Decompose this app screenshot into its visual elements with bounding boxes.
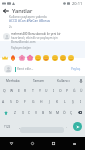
button[interactable]: Sparkles — [26, 54, 34, 62]
button[interactable]: Kullanıcı — [51, 76, 76, 85]
staticText: Kullanıcı — [57, 79, 70, 83]
button[interactable]: Home — [22, 137, 43, 150]
staticText: T — [32, 88, 34, 93]
button[interactable]: V — [33, 107, 40, 118]
button[interactable]: P — [64, 85, 71, 96]
staticText: hazırlandı, etkinlik ve paylaşım için — [11, 36, 58, 40]
button[interactable]: Q — [0, 85, 8, 96]
staticText: X — [22, 110, 24, 115]
staticText: B — [42, 110, 45, 115]
button[interactable]: L — [61, 96, 69, 107]
staticText: Paylaşımı beğen — [11, 46, 31, 50]
button[interactable]: T — [29, 85, 36, 96]
button[interactable]: Crown — [1, 54, 9, 62]
button[interactable]: J — [45, 96, 53, 107]
staticText: Ş — [72, 99, 74, 104]
button[interactable]: Paylaş — [69, 65, 83, 73]
button[interactable]: K — [53, 96, 61, 107]
staticText: O — [59, 88, 62, 93]
staticText: K — [56, 99, 59, 104]
button[interactable]: Blossom — [18, 54, 26, 62]
button[interactable]: A — [0, 96, 7, 107]
staticText: W — [10, 88, 14, 93]
staticText: F — [24, 99, 26, 104]
staticText: M — [56, 110, 60, 115]
staticText: Ö — [63, 110, 66, 115]
staticText: Yanıtlar — [12, 7, 33, 15]
button[interactable]: Wink — [67, 54, 75, 62]
staticText: Tamam — [33, 79, 45, 83]
staticText: , — [19, 124, 20, 129]
button[interactable]: Back — [0, 137, 22, 150]
button[interactable]: Back — [1, 6, 10, 15]
staticText: H — [40, 99, 43, 104]
button[interactable]: I — [77, 96, 85, 107]
button[interactable]: Grin — [51, 54, 59, 62]
button[interactable]: X — [19, 107, 26, 118]
button[interactable]: Comma — [15, 120, 23, 133]
button[interactable]: D — [14, 96, 21, 107]
button[interactable]: Ğ — [71, 85, 78, 96]
button[interactable]: S — [7, 96, 14, 107]
staticText: 20:11 — [72, 1, 83, 6]
button[interactable]: G — [29, 96, 37, 107]
button[interactable]: F — [21, 96, 29, 107]
button[interactable]: Tamam — [26, 76, 51, 85]
staticText: Ç — [70, 110, 73, 115]
button[interactable]: Laugh — [42, 54, 50, 62]
button[interactable]: Ş — [69, 96, 77, 107]
staticText: J — [49, 99, 50, 104]
staticText: ?123 — [4, 125, 11, 129]
staticText: I — [80, 99, 82, 104]
staticText: N — [49, 110, 52, 115]
staticText: L — [64, 99, 66, 104]
button[interactable]: Period — [62, 120, 70, 133]
button[interactable]: Merhaba — [0, 76, 26, 85]
button[interactable]: O — [57, 85, 64, 96]
button[interactable]: Ö — [61, 107, 68, 118]
button[interactable]: Backspace — [75, 107, 85, 118]
button[interactable]: Recents — [43, 137, 64, 150]
staticText: D — [16, 99, 19, 104]
staticText: P — [66, 88, 69, 93]
staticText: mehmet480 Bonusbonaki ile yeni bir — [11, 32, 61, 36]
staticText: #CCO #Can #NeCan #Bonus — [9, 19, 51, 23]
staticText: Ü — [80, 88, 83, 93]
button[interactable]: Symbols — [0, 120, 15, 133]
button[interactable]: Fire — [9, 54, 17, 62]
staticText: . — [66, 124, 67, 129]
button[interactable]: R — [22, 85, 29, 96]
staticText: Ğ — [73, 88, 76, 93]
staticText: V — [35, 110, 38, 115]
button[interactable]: Joy — [59, 54, 67, 62]
staticText: Merhaba — [6, 79, 20, 83]
staticText: A — [2, 99, 5, 104]
button[interactable]: H — [37, 96, 45, 107]
button[interactable]: Shift — [0, 107, 11, 118]
staticText: Yanıt ekle... — [17, 67, 34, 71]
staticText: C — [28, 110, 31, 115]
button[interactable]: Smile — [34, 54, 42, 62]
button[interactable]: Y — [36, 85, 43, 96]
button[interactable]: Ü — [78, 85, 85, 96]
button[interactable]: Z — [11, 107, 19, 118]
button[interactable]: U — [43, 85, 50, 96]
button[interactable]: Send — [70, 120, 85, 133]
button[interactable]: B — [40, 107, 47, 118]
button[interactable]: N — [47, 107, 54, 118]
staticText: 2s — [9, 25, 12, 29]
staticText: E — [18, 88, 20, 93]
staticText: Y — [39, 88, 41, 93]
button[interactable]: Ç — [68, 107, 75, 118]
button[interactable]: M — [54, 107, 61, 118]
button[interactable]: W — [8, 85, 15, 96]
staticText: R — [24, 88, 27, 93]
button[interactable]: I — [50, 85, 57, 96]
button[interactable]: Voice input — [76, 76, 85, 85]
button[interactable]: E — [15, 85, 22, 96]
staticText: U — [45, 88, 48, 93]
button[interactable]: C — [26, 107, 33, 118]
staticText: Q — [3, 88, 6, 93]
button[interactable]: Hide keyboard — [64, 137, 85, 150]
